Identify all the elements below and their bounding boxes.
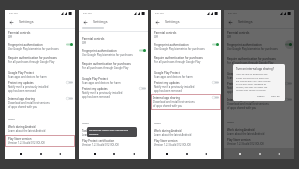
staticText: For all purchases through Google Play bbox=[8, 60, 55, 64]
button[interactable]: Google Play Protect bbox=[224, 72, 294, 80]
staticText: Off bbox=[82, 41, 86, 45]
button[interactable]: Cancel bbox=[255, 94, 267, 99]
staticText: Notify me if a previously installed app … bbox=[227, 86, 268, 94]
button[interactable]: Recents bbox=[235, 148, 244, 157]
staticText: Fingerprint authentication bbox=[227, 43, 262, 47]
button[interactable]: Home bbox=[36, 149, 45, 158]
button[interactable]: Fingerprint authentication bbox=[79, 49, 148, 57]
staticText: Fingerprint authentication bbox=[8, 43, 43, 47]
button[interactable]: Toggle bbox=[139, 49, 146, 52]
staticText: Google Play Protect bbox=[154, 71, 180, 75]
staticText: Protect my updates bbox=[154, 81, 180, 85]
staticText: Google Play Protect bbox=[227, 72, 253, 76]
button[interactable]: Work during Android bbox=[5, 125, 75, 133]
button[interactable]: Require authentication for purchases bbox=[5, 56, 75, 64]
button[interactable]: Require authentication for purchases bbox=[224, 57, 294, 65]
button[interactable]: Play Store version bbox=[224, 138, 294, 146]
button[interactable]: Home bbox=[182, 149, 191, 158]
staticText: For all purchases through Google Play bbox=[227, 61, 274, 65]
button[interactable]: Home bbox=[255, 149, 264, 158]
button[interactable]: Protect my updates bbox=[224, 82, 294, 94]
button[interactable]: Back bbox=[55, 149, 64, 158]
button[interactable]: Back bbox=[7, 18, 15, 26]
staticText: Require authentication for purchases bbox=[227, 57, 276, 61]
button[interactable]: Turn on bbox=[269, 94, 282, 99]
button[interactable]: Google Play Protect bbox=[151, 71, 221, 79]
staticText: Off bbox=[8, 35, 12, 39]
button[interactable]: Protect my updates bbox=[5, 81, 75, 93]
button[interactable]: Toggle bbox=[66, 81, 73, 84]
button[interactable]: Toggle bbox=[212, 81, 219, 84]
button[interactable]: Back bbox=[201, 149, 210, 158]
button[interactable]: Toggle bbox=[285, 82, 292, 85]
button[interactable]: Recents bbox=[235, 149, 244, 158]
button[interactable]: Play Store version bbox=[151, 139, 221, 147]
button[interactable]: Toggle bbox=[212, 96, 219, 99]
button[interactable]: Toggle bbox=[212, 43, 219, 46]
staticText: Scan apps and devices for harm bbox=[227, 76, 266, 80]
staticText: About bbox=[82, 122, 89, 125]
staticText: Version 1.2.3 build 012 (XX-XX) bbox=[227, 142, 264, 146]
button[interactable]: Set whether Turkish and Australia and te… bbox=[87, 127, 137, 137]
button[interactable]: Back bbox=[153, 18, 161, 26]
button[interactable]: Toggle bbox=[285, 98, 292, 101]
button[interactable]: Play Protect certification bbox=[79, 139, 148, 147]
button[interactable]: Work during Android bbox=[224, 128, 294, 136]
button[interactable]: Parental controls bbox=[79, 37, 148, 45]
staticText: 4:41 PM bbox=[9, 12, 18, 15]
staticText: Require authentication for purchases bbox=[154, 56, 203, 60]
staticText: Internal app sharing bbox=[8, 97, 35, 101]
staticText: Work during Android bbox=[154, 129, 182, 133]
staticText: Fingerprint authentication bbox=[82, 49, 117, 53]
button[interactable]: Toggle bbox=[139, 87, 146, 90]
button[interactable]: Recents bbox=[90, 149, 99, 158]
button[interactable]: Fingerprint authentication bbox=[151, 43, 221, 51]
button[interactable]: Work during Android bbox=[151, 129, 221, 137]
staticText: 4:41 PM bbox=[228, 12, 237, 15]
button[interactable]: Task sharing Android bbox=[79, 129, 148, 137]
button[interactable]: Google Play Protect bbox=[5, 71, 75, 79]
button[interactable]: Toggle bbox=[66, 97, 73, 100]
button[interactable]: Recents bbox=[16, 149, 25, 158]
button[interactable]: Back bbox=[81, 18, 89, 26]
staticText: For all purchases through Google Play bbox=[82, 66, 129, 70]
button[interactable]: Toggle bbox=[66, 43, 73, 46]
staticText: Parental controls bbox=[82, 37, 105, 41]
staticText: Settings bbox=[165, 19, 180, 24]
button[interactable]: Internal app sharing bbox=[5, 97, 75, 109]
button[interactable]: Parental controls bbox=[224, 31, 294, 39]
staticText: Notify me if a previously installed app … bbox=[8, 85, 49, 93]
staticText: Protect my updates bbox=[82, 87, 108, 91]
button[interactable]: Internal app sharing bbox=[151, 96, 221, 108]
staticText: Cancel bbox=[257, 95, 265, 98]
staticText: Parental controls bbox=[154, 31, 177, 35]
staticText: Play Store version bbox=[154, 139, 178, 143]
button[interactable]: Home bbox=[255, 148, 264, 157]
staticText: Work during Android bbox=[8, 125, 36, 129]
button[interactable]: Recents bbox=[162, 149, 171, 158]
button[interactable]: Protect my updates bbox=[151, 81, 221, 93]
button[interactable]: Toggle bbox=[285, 43, 292, 46]
button[interactable]: Google Play Protect bbox=[79, 77, 148, 85]
button[interactable]: Back bbox=[274, 149, 283, 158]
button[interactable]: Parental controls bbox=[151, 31, 221, 39]
button[interactable]: Fingerprint authentication bbox=[5, 43, 75, 51]
button[interactable]: Internal app sharing bbox=[224, 98, 294, 110]
button[interactable]: Protect my updates bbox=[79, 87, 148, 99]
staticText: Download and install test versions of ap… bbox=[153, 100, 195, 108]
staticText: Internal app sharing bbox=[227, 98, 254, 102]
button[interactable]: Play Store version bbox=[5, 137, 75, 145]
staticText: Download and install test versions of ap… bbox=[227, 102, 269, 110]
button[interactable]: Require authentication for purchases bbox=[151, 56, 221, 64]
staticText: Parental controls bbox=[8, 31, 31, 35]
button[interactable]: Fingerprint authentication bbox=[224, 43, 294, 51]
button[interactable]: Parental controls bbox=[5, 31, 75, 39]
button[interactable]: Home bbox=[109, 149, 118, 158]
staticText: Require authentication for purchases bbox=[8, 56, 57, 60]
button[interactable]: Back bbox=[226, 18, 234, 26]
button[interactable]: Back bbox=[274, 148, 283, 157]
button[interactable]: Require authentication for purchases bbox=[79, 62, 148, 70]
staticText: Settings bbox=[238, 19, 253, 24]
staticText: Settings bbox=[19, 19, 34, 24]
button[interactable]: Back bbox=[129, 149, 138, 158]
